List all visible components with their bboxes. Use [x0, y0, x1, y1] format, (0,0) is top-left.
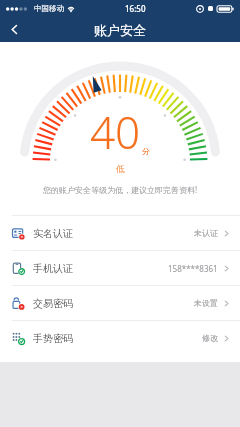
- staticText: 修改: [202, 333, 218, 343]
- button[interactable]: 手机认证: [0, 251, 240, 285]
- staticText: 16:50: [125, 3, 146, 14]
- staticText: 手机认证: [33, 262, 73, 275]
- staticText: 158****8361: [168, 263, 218, 274]
- button[interactable]: 交易密码: [0, 286, 240, 320]
- staticText: 交易密码: [33, 297, 73, 310]
- staticText: 40: [90, 102, 141, 162]
- button[interactable]: 实名认证: [0, 216, 240, 250]
- staticText: 中国移动: [34, 4, 64, 13]
- staticText: 您的账户安全等级为低，建议立即完善资料!: [0, 184, 240, 195]
- staticText: 手势密码: [33, 332, 73, 345]
- staticText: 未设置: [194, 298, 218, 308]
- button[interactable]: 手势密码: [0, 321, 240, 355]
- staticText: 账户安全: [94, 22, 146, 38]
- button[interactable]: Back: [0, 17, 28, 42]
- staticText: 实名认证: [33, 227, 73, 240]
- staticText: 未认证: [194, 228, 218, 238]
- staticText: 分: [142, 146, 150, 156]
- staticText: 低: [116, 163, 125, 174]
